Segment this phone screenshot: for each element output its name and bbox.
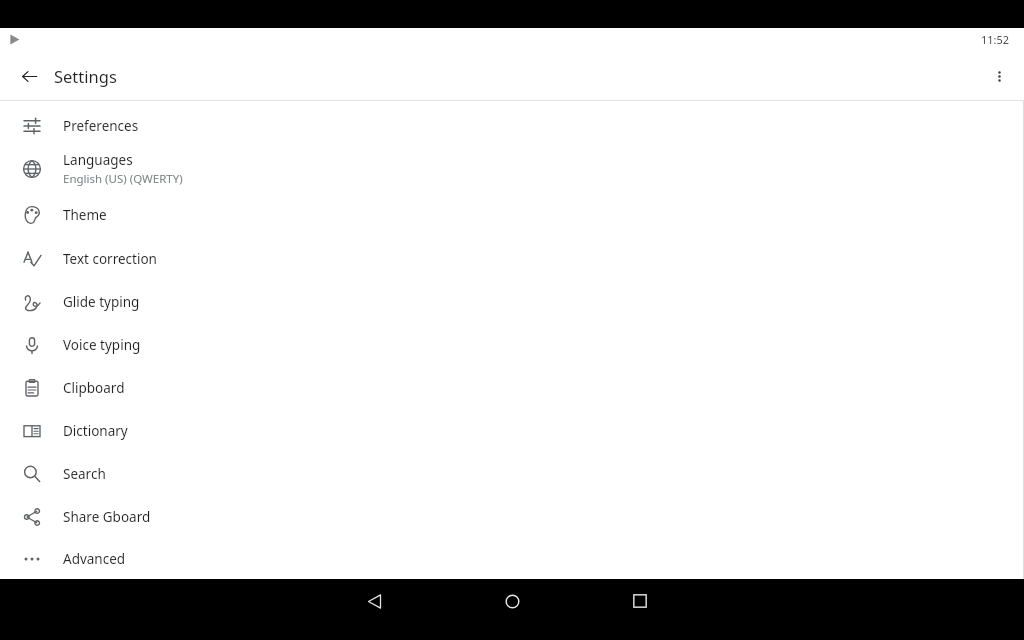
staticText: Preferences [63,117,139,135]
button[interactable]: Back [358,585,390,617]
staticText: Dictionary [63,422,128,440]
button[interactable]: Back [14,61,44,91]
staticText: Text correction [63,250,157,268]
button[interactable]: Share Gboard [0,495,1024,538]
staticText: English (US) (QWERTY) [63,171,183,187]
button[interactable]: Preferences [0,106,1024,145]
button[interactable]: Search [0,452,1024,495]
button[interactable]: Glide typing [0,280,1024,323]
button[interactable]: Theme [0,193,1024,237]
button[interactable]: Text correction [0,237,1024,280]
staticText: Languages [63,151,133,169]
button[interactable]: Languages [0,145,1024,193]
button[interactable]: Clipboard [0,366,1024,409]
button[interactable]: More options [982,59,1016,93]
staticText: Voice typing [63,336,141,354]
button[interactable]: Advanced [0,538,1024,579]
staticText: Clipboard [63,379,125,397]
button[interactable]: Recent apps [624,585,656,617]
staticText: Search [63,465,106,483]
staticText: Theme [63,206,107,224]
staticText: Glide typing [63,293,140,311]
staticText: Share Gboard [63,508,151,526]
button[interactable]: Home [496,585,528,617]
button[interactable]: Dictionary [0,409,1024,452]
staticText: 11:52 [981,32,1010,47]
staticText: Advanced [63,550,126,568]
staticText: Settings [54,65,117,87]
button[interactable]: Voice typing [0,323,1024,366]
